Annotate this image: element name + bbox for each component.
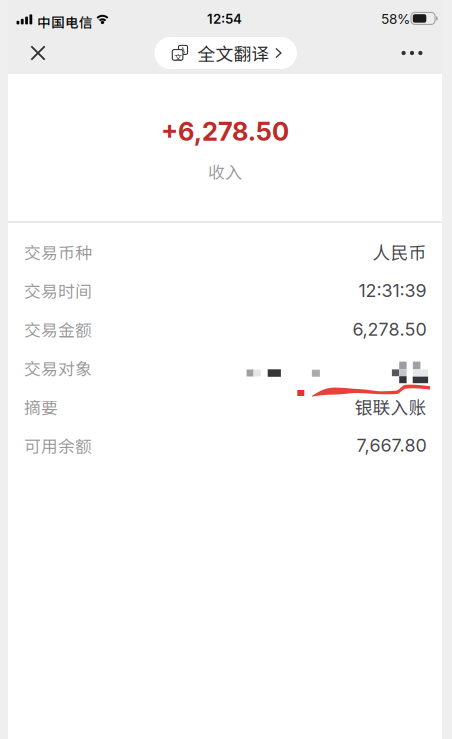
staticText: 交易币种 [24, 240, 92, 264]
staticText: 银联入账 [354, 394, 426, 419]
staticText: 可用余额 [24, 433, 92, 457]
button[interactable]: A [154, 37, 297, 69]
staticText: 6,278.50 [352, 318, 426, 340]
staticText: 全文翻译 [197, 40, 269, 66]
staticText: 文 [174, 51, 182, 63]
staticText: 12:54 [207, 11, 242, 27]
staticText: 交易对象 [24, 356, 92, 380]
button[interactable]: Close [16, 32, 60, 74]
staticText: 交易金额 [24, 317, 92, 341]
staticText: A [180, 46, 185, 55]
staticText: 58% [381, 11, 410, 27]
button[interactable]: More [390, 32, 434, 74]
staticText: 人民币 [372, 239, 426, 265]
staticText: 12:31:39 [358, 280, 426, 301]
staticText: 中国电信 [37, 12, 93, 31]
staticText: 摘要 [24, 394, 58, 419]
staticText: 7,667.80 [356, 434, 426, 456]
staticText: 收入 [208, 159, 242, 184]
staticText: +6,278.50 [161, 116, 289, 147]
staticText: 交易时间 [24, 278, 92, 303]
